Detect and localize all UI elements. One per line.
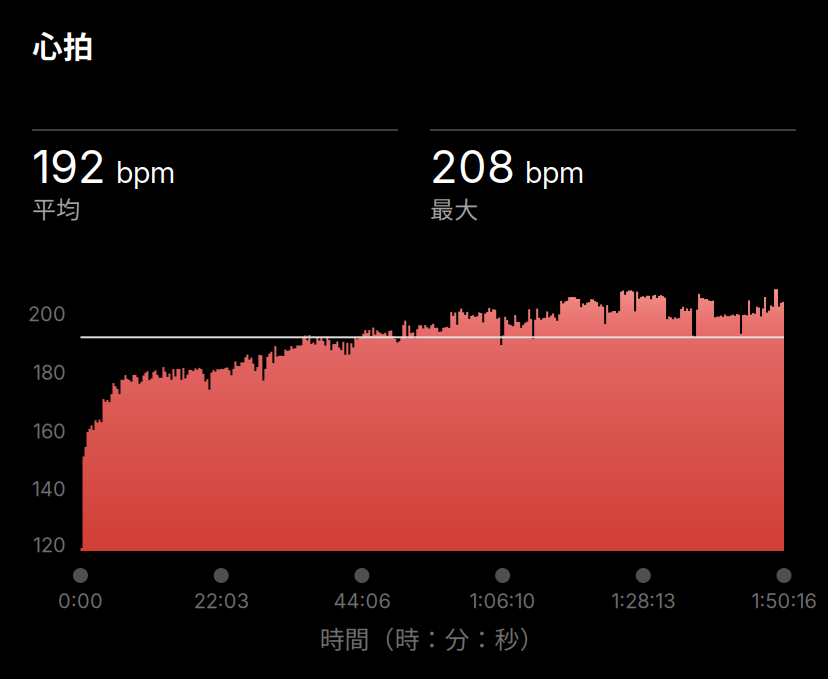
staticText: 1:06:10: [470, 589, 536, 613]
button[interactable]: 208: [430, 129, 796, 217]
staticText: 192: [32, 139, 106, 194]
staticText: 140: [32, 477, 66, 501]
staticText: 120: [33, 533, 66, 557]
staticText: 心拍: [32, 23, 94, 67]
staticText: 44:06: [333, 589, 390, 613]
button[interactable]: 心拍グラフ: [0, 0, 828, 679]
staticText: 22:03: [194, 589, 249, 613]
staticText: 平均: [32, 191, 80, 225]
staticText: 180: [33, 360, 66, 384]
staticText: 208: [430, 139, 515, 194]
staticText: 0:00: [58, 589, 103, 613]
staticText: bpm: [116, 155, 175, 190]
staticText: 200: [28, 302, 66, 326]
button[interactable]: 192: [32, 129, 398, 217]
staticText: 1:28:13: [611, 589, 675, 613]
staticText: 160: [33, 419, 66, 443]
staticText: 最大: [430, 191, 478, 225]
staticText: 時間（時：分：秒）: [319, 620, 544, 656]
staticText: bpm: [525, 155, 584, 190]
staticText: 1:50:16: [751, 589, 816, 613]
